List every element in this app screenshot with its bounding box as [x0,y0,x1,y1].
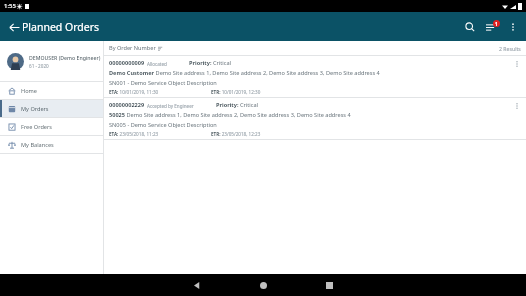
button[interactable]: 00000000009 [104,56,526,97]
button[interactable]: Home [248,274,278,296]
staticText: ETR: 10/01/2019, 12:30 [211,89,261,95]
button[interactable]: More options [503,17,523,37]
staticText: ETA: 23/05/2018, 11:23 [109,131,159,137]
staticText: 00000002229 [109,101,145,109]
button[interactable]: Filter [481,16,503,38]
staticText: My Balances [21,141,54,149]
staticText: By Order Number [109,44,156,52]
button[interactable]: Home [0,82,103,99]
staticText: ETR: 23/05/2018, 12:23 [211,131,261,137]
staticText: 1:55 [4,2,16,10]
staticText: Priority: Critical [216,101,258,109]
staticText: DEMOUSER (Demo Engineer) [29,54,101,61]
button[interactable]: My Orders [0,100,103,117]
button[interactable]: Back [4,17,24,37]
staticText: ETA: 10/01/2019, 11:30 [109,89,159,95]
button[interactable]: Back [182,274,212,296]
staticText: SN005 - Demo Service Object Description [109,121,217,129]
staticText: 00000000009 [109,59,145,67]
button[interactable]: Search [459,16,481,38]
staticText: Home [21,87,37,95]
staticText: 50025 Demo Site address 1, Demo Site add… [109,111,351,119]
button[interactable]: Order options [508,59,526,97]
staticText: My Orders [21,105,49,113]
staticText: SN001 - Demo Service Object Description [109,79,217,87]
button[interactable]: By Order Number [109,44,163,52]
button[interactable]: DEMOUSER (Demo Engineer) [0,41,103,81]
button[interactable]: Order options [508,101,526,139]
staticText: Accepted by Engineer [147,103,194,109]
staticText: 61 - 2020 [29,63,49,69]
button[interactable]: Free Orders [0,118,103,135]
staticText: 1 [495,21,498,27]
staticText: Priority: Critical [189,59,231,67]
staticText: Demo Customer Demo Site address 1, Demo … [109,69,380,77]
staticText: Planned Orders [22,20,100,34]
staticText: Allocated [147,61,167,67]
button[interactable]: Recents [314,274,344,296]
button[interactable]: 00000002229 [104,98,526,139]
staticText: 2 Results [499,45,521,52]
button[interactable]: My Balances [0,136,103,153]
staticText: Free Orders [21,123,53,131]
